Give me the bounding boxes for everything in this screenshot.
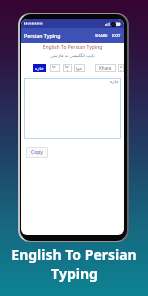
staticText: English To Persian Typing: [21, 44, 124, 51]
button[interactable]: SHARE: [94, 31, 109, 40]
button[interactable]: خا: [118, 64, 124, 72]
button[interactable]: Copy: [26, 147, 48, 158]
staticText: Copy: [31, 149, 43, 156]
button[interactable]: Khara: [95, 64, 116, 72]
staticText: خا: [120, 64, 122, 72]
staticText: SHARE: [95, 33, 108, 38]
staticText: خوا: [76, 66, 83, 71]
staticText: Typing: [51, 264, 98, 283]
button[interactable]: خاره: [24, 78, 121, 139]
button[interactable]: خال: [63, 64, 72, 72]
staticText: English To Persian: [11, 245, 137, 264]
staticText: تایپ انگلیسی به فارسی: [21, 52, 124, 58]
staticText: EXIT: [112, 33, 121, 38]
button[interactable]: خاره: [33, 64, 46, 72]
button[interactable]: خار: [50, 64, 60, 72]
button[interactable]: EXIT: [111, 31, 122, 40]
staticText: خاره: [110, 79, 119, 84]
staticText: خال: [65, 64, 70, 72]
staticText: Persian Typing: [24, 32, 61, 39]
staticText: Khara: [99, 65, 112, 71]
button[interactable]: خوا: [74, 64, 85, 72]
staticText: خار: [52, 64, 58, 72]
staticText: خاره: [35, 66, 44, 71]
